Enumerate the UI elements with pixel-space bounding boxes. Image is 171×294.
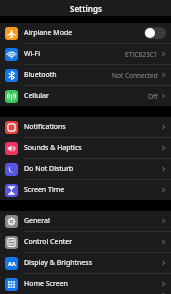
button[interactable]: Wi-Fi [0, 44, 171, 65]
button[interactable]: Home Screen [0, 274, 171, 294]
staticText: Airplane Mode [24, 28, 144, 38]
button[interactable]: Do Not Disturb [0, 159, 171, 180]
staticText: ETIC823C1 [125, 50, 158, 59]
staticText: AA [8, 260, 16, 267]
staticText: Display & Brightness [24, 258, 161, 268]
button[interactable]: Airplane Mode [0, 23, 171, 44]
button[interactable]: AA [0, 253, 171, 274]
staticText: Not Connected [112, 71, 158, 80]
staticText: General [24, 216, 161, 226]
button[interactable]: Screen Time [0, 180, 171, 200]
staticText: Control Center [24, 237, 161, 247]
staticText: Cellular [24, 91, 148, 101]
staticText: Sounds & Haptics [24, 143, 161, 153]
button[interactable]: Control Center [0, 232, 171, 253]
button[interactable]: Bluetooth [0, 65, 171, 86]
button[interactable]: Sounds & Haptics [0, 138, 171, 159]
staticText: Wi-Fi [24, 49, 125, 59]
staticText: Home Screen [24, 279, 161, 289]
staticText: Do Not Disturb [24, 164, 161, 174]
staticText: Notifications [24, 122, 161, 132]
staticText: Bluetooth [24, 70, 112, 80]
staticText: Screen Time [24, 185, 161, 195]
button[interactable]: Cellular [0, 86, 171, 106]
button[interactable]: Notifications [0, 117, 171, 138]
button[interactable]: General [0, 211, 171, 232]
staticText: Settings [70, 3, 102, 14]
staticText: Off [148, 92, 158, 101]
button[interactable]: Airplane Mode toggle [144, 27, 166, 39]
